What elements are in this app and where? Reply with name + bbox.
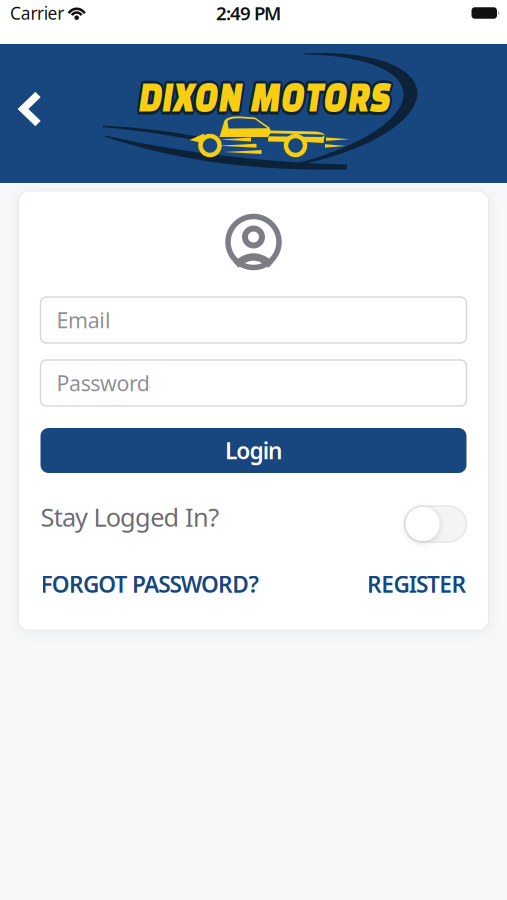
button[interactable]: Stay Logged In: [404, 506, 466, 542]
button[interactable]: Login: [40, 428, 466, 473]
staticText: DIXON MOTORS: [116, 75, 413, 122]
staticText: DIXON MOTORS: [116, 70, 413, 117]
staticText: DIXON MOTORS: [116, 75, 413, 122]
staticText: DIXON MOTORS: [116, 73, 413, 119]
button[interactable]: Back: [0, 78, 56, 139]
staticText: DIXON MOTORS: [118, 71, 415, 117]
staticText: 2:49 PM: [216, 1, 281, 25]
staticText: DIXON MOTORS: [115, 75, 412, 121]
staticText: Password: [56, 369, 150, 397]
button[interactable]: Password: [40, 360, 466, 406]
staticText: Carrier: [10, 1, 64, 24]
staticText: DIXON MOTORS: [115, 71, 412, 117]
staticText: FORGOT PASSWORD?: [40, 569, 258, 599]
button[interactable]: REGISTER: [367, 569, 466, 599]
staticText: DIXON MOTORS: [117, 76, 414, 122]
staticText: Stay Logged In?: [40, 500, 219, 534]
staticText: Email: [56, 306, 111, 334]
staticText: REGISTER: [367, 569, 466, 599]
staticText: DIXON MOTORS: [118, 75, 415, 121]
staticText: Login: [225, 435, 282, 465]
staticText: DIXON MOTORS: [119, 73, 416, 119]
button[interactable]: FORGOT PASSWORD?: [40, 569, 258, 599]
button[interactable]: Email: [40, 297, 466, 343]
staticText: DIXON MOTORS: [114, 73, 411, 119]
